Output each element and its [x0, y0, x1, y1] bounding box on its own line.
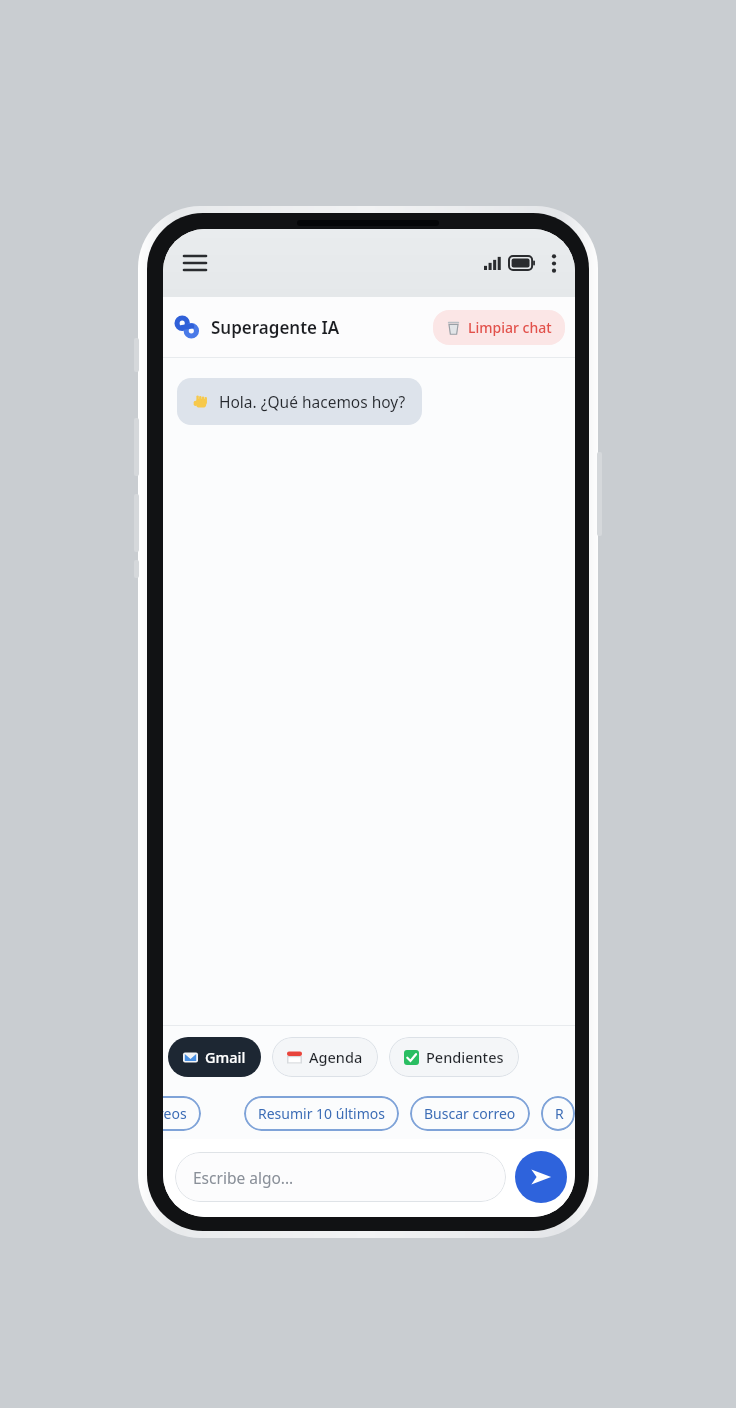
button[interactable]: Escribe algo... — [175, 1152, 506, 1202]
staticText: Escribe algo... — [193, 1167, 294, 1188]
staticText: Agenda — [309, 1047, 363, 1067]
staticText: Redactar nuevo — [555, 1104, 561, 1123]
button[interactable]: Redactar nuevo — [541, 1096, 575, 1131]
button[interactable]: Hola. ¿Qué hacemos hoy? — [177, 378, 422, 425]
button[interactable]: More options — [543, 252, 565, 274]
staticText: Buscar correo — [424, 1104, 516, 1123]
button[interactable]: Send — [515, 1151, 567, 1203]
staticText: Pendientes — [426, 1047, 504, 1067]
button[interactable]: Resumir 10 últimos — [244, 1096, 399, 1131]
staticText: Resumir 10 últimos — [258, 1104, 385, 1123]
staticText: Hola. ¿Qué hacemos hoy? — [219, 391, 406, 412]
button[interactable]: Agenda — [272, 1037, 378, 1077]
staticText: Correos — [163, 1104, 187, 1123]
staticText: Limpiar chat — [468, 318, 552, 337]
staticText: Gmail — [205, 1047, 246, 1067]
button[interactable]: Gmail — [168, 1037, 261, 1077]
button[interactable]: Menu — [175, 243, 215, 283]
staticText: Superagente IA — [211, 316, 340, 339]
button[interactable]: Pendientes — [389, 1037, 519, 1077]
button[interactable]: Correos — [163, 1096, 201, 1131]
button[interactable]: Limpiar chat — [433, 310, 565, 345]
button[interactable]: Buscar correo — [410, 1096, 530, 1131]
